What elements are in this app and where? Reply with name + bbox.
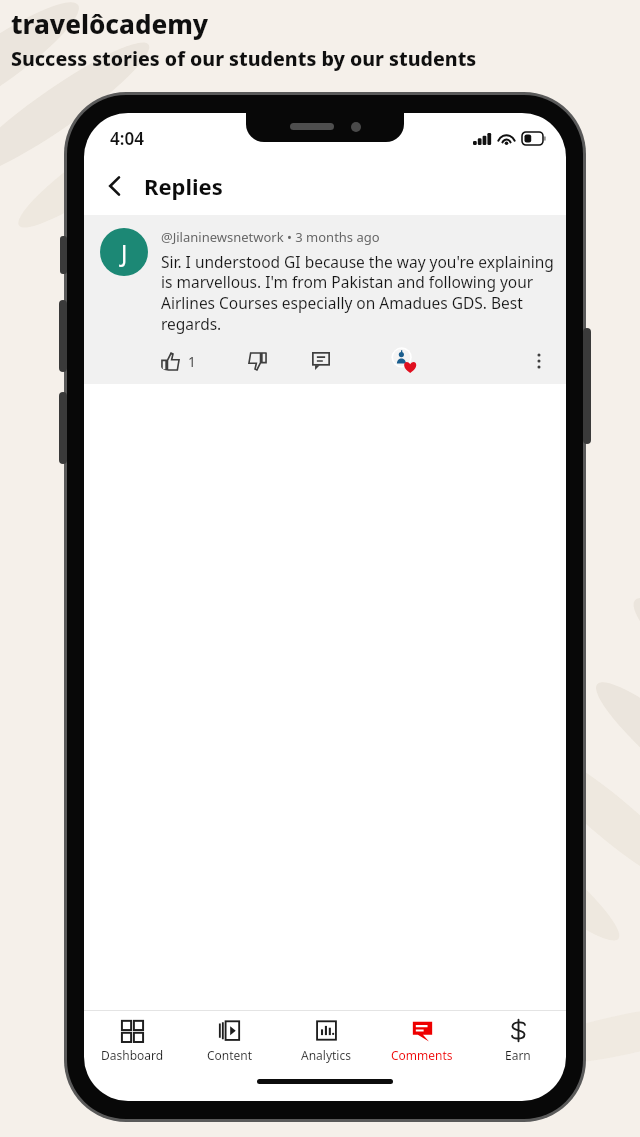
button[interactable]: Like — [159, 352, 198, 371]
staticText: 4:04 — [110, 127, 144, 150]
button[interactable]: More options — [524, 346, 554, 376]
staticText: J — [121, 237, 128, 268]
staticText: Earn — [505, 1047, 531, 1063]
button[interactable]: Creator heart — [390, 346, 420, 376]
staticText: travelôcademy — [11, 6, 209, 41]
button[interactable]: Jilaninewsnetwork avatar — [100, 228, 148, 276]
staticText: Content — [207, 1047, 253, 1063]
staticText: Success stories of our students by our s… — [11, 45, 477, 72]
staticText: @Jilaninewsnetwork • 3 months ago — [161, 228, 380, 246]
button[interactable]: Analytics — [278, 1011, 374, 1069]
staticText: Sir. I understood GI because the way you… — [161, 251, 554, 335]
staticText: Analytics — [301, 1047, 351, 1063]
staticText: 1 — [188, 353, 196, 371]
staticText: Dashboard — [101, 1047, 164, 1063]
button[interactable]: Back — [92, 163, 138, 209]
button[interactable]: Comments — [374, 1011, 470, 1069]
staticText: Comments — [391, 1047, 453, 1063]
staticText: Replies — [144, 171, 223, 201]
button[interactable]: Reply — [308, 348, 334, 374]
button[interactable]: Earn — [470, 1011, 566, 1069]
other: Like — [161, 352, 180, 371]
button[interactable]: Dislike — [244, 348, 270, 374]
button[interactable]: Dashboard — [84, 1011, 181, 1069]
button[interactable]: Content — [181, 1011, 278, 1069]
button[interactable]: Jilaninewsnetwork avatar — [84, 215, 566, 384]
